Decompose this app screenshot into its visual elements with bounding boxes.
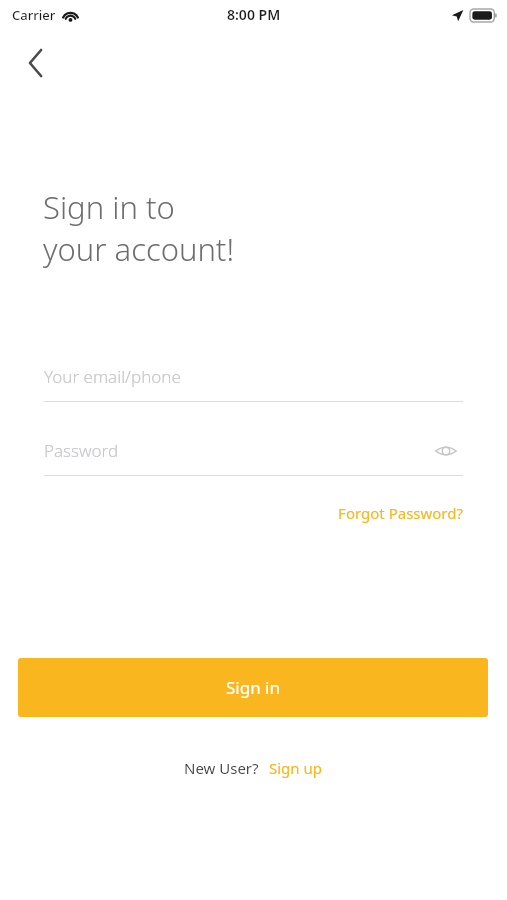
staticText: Sign up bbox=[269, 758, 322, 778]
button[interactable]: Show password bbox=[429, 434, 463, 468]
button[interactable]: Sign up bbox=[268, 758, 323, 778]
staticText: Forgot Password? bbox=[338, 503, 463, 523]
staticText: Your email/phone bbox=[44, 365, 181, 388]
staticText: Sign in to bbox=[43, 186, 175, 228]
button[interactable]: Forgot Password? bbox=[303, 499, 463, 526]
button[interactable]: Back bbox=[14, 41, 58, 85]
staticText: Carrier bbox=[12, 6, 56, 24]
button[interactable]: Password bbox=[44, 431, 463, 476]
staticText: New User? bbox=[184, 758, 259, 778]
button[interactable]: Your email/phone bbox=[44, 357, 463, 402]
button[interactable]: Sign in bbox=[18, 658, 488, 717]
staticText: Sign in bbox=[226, 676, 280, 699]
staticText: Password bbox=[44, 439, 119, 462]
staticText: your account! bbox=[43, 228, 235, 270]
staticText: 8:00 PM bbox=[227, 5, 281, 24]
